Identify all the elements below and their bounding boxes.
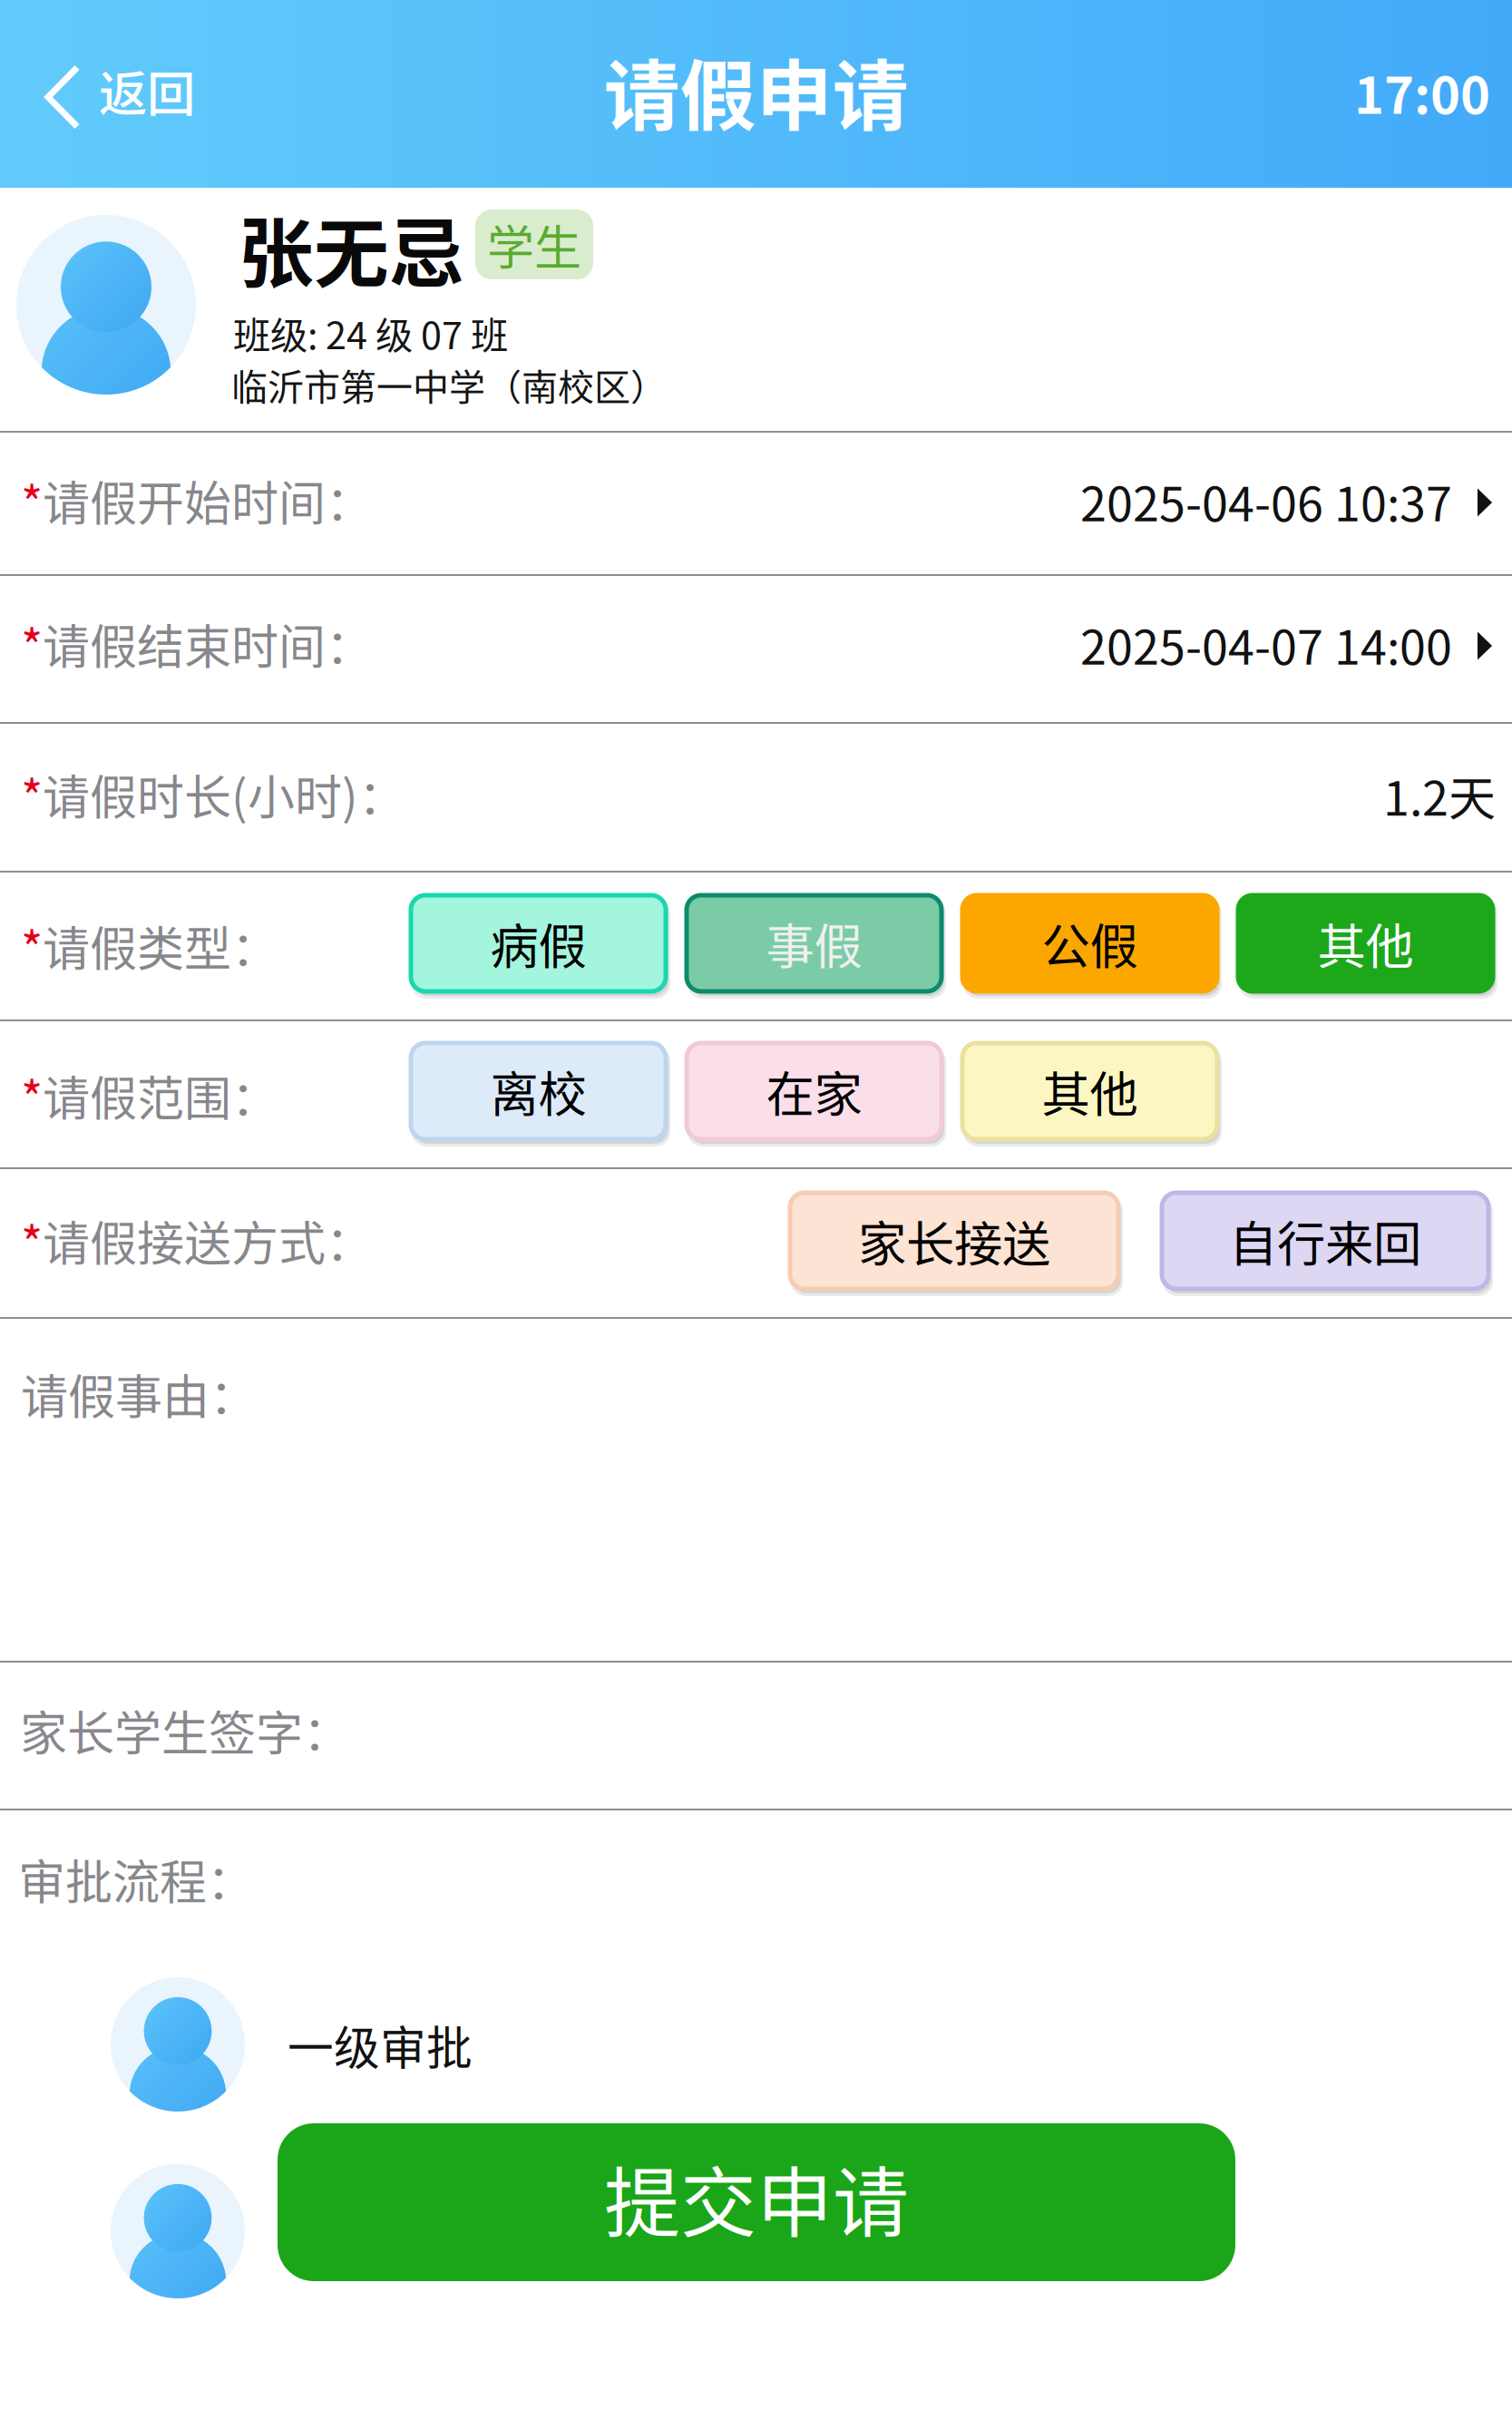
staticText: 请假接送方式： bbox=[43, 1206, 373, 1275]
staticText: 请假事由： bbox=[21, 1360, 257, 1428]
staticText: * bbox=[21, 1206, 43, 1275]
button[interactable]: 其他 bbox=[964, 1045, 1219, 1141]
staticText: 请假时长(小时)： bbox=[43, 760, 405, 828]
staticText: 家长学生签字： bbox=[20, 1696, 350, 1764]
button[interactable]: 在家 bbox=[688, 1045, 943, 1141]
staticText: 班级: 24 级 07 班 bbox=[233, 306, 508, 360]
staticText: 一级审批 bbox=[288, 2012, 473, 2078]
staticText: 请假申请 bbox=[604, 36, 908, 146]
button[interactable]: 事假 bbox=[688, 897, 943, 993]
button[interactable]: 其他 bbox=[1240, 897, 1495, 993]
staticText: 病假 bbox=[490, 908, 586, 978]
staticText: 公假 bbox=[1042, 908, 1138, 978]
button[interactable]: 离校 bbox=[413, 1045, 668, 1141]
staticText: 请假开始时间： bbox=[43, 466, 373, 535]
staticText: * bbox=[21, 610, 43, 678]
button[interactable]: 自行来回 bbox=[1164, 1195, 1490, 1291]
button[interactable]: * bbox=[0, 434, 1512, 574]
staticText: 2025-04-07 14:00 bbox=[1080, 610, 1452, 678]
staticText: * bbox=[21, 760, 43, 828]
staticText: * bbox=[21, 466, 43, 535]
staticText: 家长接送 bbox=[858, 1206, 1050, 1276]
staticText: 自行来回 bbox=[1229, 1206, 1421, 1276]
staticText: * bbox=[21, 1061, 43, 1130]
staticText: 返回 bbox=[99, 56, 195, 126]
staticText: 学生 bbox=[487, 210, 581, 279]
staticText: 离校 bbox=[490, 1056, 586, 1126]
staticText: 请假范围： bbox=[43, 1061, 278, 1130]
staticText: 张无忌 bbox=[239, 194, 464, 303]
staticText: 临沂市第一中学（南校区） bbox=[231, 358, 667, 411]
button[interactable]: * bbox=[0, 577, 1512, 717]
staticText: 2025-04-06 10:37 bbox=[1080, 467, 1452, 535]
staticText: 请假结束时间： bbox=[43, 610, 373, 678]
button[interactable]: 家长接送 bbox=[792, 1195, 1120, 1291]
staticText: 提交申请 bbox=[604, 2143, 909, 2253]
staticText: 其他 bbox=[1042, 1056, 1138, 1126]
staticText: 请假类型： bbox=[43, 912, 278, 980]
button[interactable]: 返回 bbox=[62, 30, 234, 157]
staticText: 其他 bbox=[1317, 908, 1414, 978]
staticText: 17:00 bbox=[1354, 55, 1490, 128]
staticText: 在家 bbox=[766, 1056, 862, 1126]
button[interactable]: 病假 bbox=[413, 897, 668, 993]
button[interactable]: 公假 bbox=[964, 897, 1219, 993]
staticText: 审批流程： bbox=[18, 1845, 254, 1913]
staticText: * bbox=[21, 912, 43, 980]
staticText: 事假 bbox=[766, 908, 862, 978]
staticText: 1.2天 bbox=[1383, 761, 1496, 829]
button[interactable]: 提交申请 bbox=[278, 2123, 1235, 2281]
